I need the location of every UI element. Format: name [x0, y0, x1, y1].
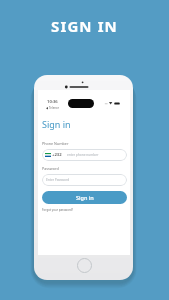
staticText: 10:36 [47, 99, 58, 105]
staticText: Sign in [42, 118, 71, 130]
button[interactable]: Forgot your password? [42, 208, 74, 212]
staticText: Enter Password [46, 178, 70, 182]
staticText: enter phone number [67, 153, 99, 157]
staticText: Telenor [49, 106, 59, 110]
button[interactable]: Sign in [42, 191, 127, 204]
staticText: Phone Number [42, 141, 69, 146]
staticText: Password [42, 166, 59, 171]
button[interactable]: Enter Password [42, 174, 127, 186]
staticText: +232 [52, 152, 62, 158]
staticText: Sign in [76, 194, 94, 201]
staticText: SIGN IN [0, 16, 169, 36]
button[interactable]: +232 [42, 149, 127, 161]
